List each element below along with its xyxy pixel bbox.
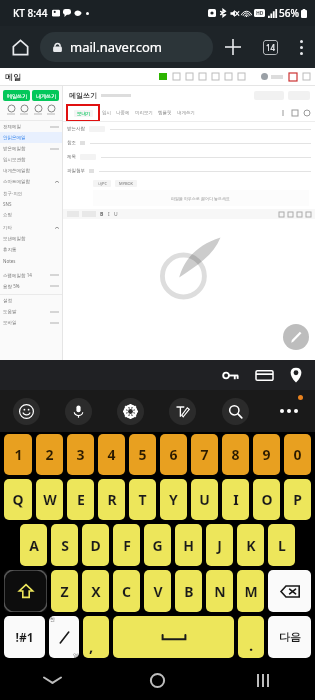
button[interactable]: C [113,570,140,612]
button[interactable]: A [20,524,47,566]
button[interactable]: 휴지통 [0,244,62,255]
button[interactable]: 스팸메일함 14 [0,269,62,280]
button[interactable]: 2 [36,434,63,475]
button[interactable]: Notes [0,255,62,266]
button[interactable]: P [284,479,311,520]
staticText: 한 [50,616,55,622]
button[interactable]: mail.naver.com [40,32,213,62]
button[interactable]: S [51,524,78,566]
button[interactable]: 9 [253,434,280,475]
button[interactable]: More [262,390,315,432]
button[interactable]: H [175,524,202,566]
button[interactable]: 용량 5% [0,280,62,291]
button[interactable]: Recent apps [210,660,315,700]
button[interactable]: 내게쓰기 [32,90,59,101]
staticText: 보낸메일함 [3,236,26,242]
button[interactable]: 다음 [268,616,311,658]
staticText: 7 [200,445,209,464]
button[interactable]: M [237,570,264,612]
button[interactable]: Home [105,660,210,700]
staticText: MYBOX [119,181,133,186]
button[interactable]: 메일쓰기 [3,90,30,101]
button[interactable]: F [113,524,140,566]
button[interactable]: O [253,479,280,520]
button[interactable]: G [144,524,171,566]
button[interactable]: L [268,524,295,566]
button[interactable]: 템플릿 [158,110,172,116]
button[interactable]: 6 [160,434,187,475]
button[interactable]: Tabs: 14 [253,26,287,68]
button[interactable]: Compose [283,324,309,350]
button[interactable]: Voice input [52,390,104,432]
button[interactable]: 나중에 [116,110,130,116]
button[interactable]: 7 [191,434,218,475]
staticText: 설정 [3,298,12,304]
button[interactable]: , [83,616,109,658]
staticText: I [108,211,110,218]
button[interactable]: D [82,524,109,566]
button[interactable]: 보내기 [74,110,93,117]
button[interactable]: B [175,570,202,612]
button[interactable]: Payment methods [247,360,281,390]
button[interactable]: 5 [129,434,156,475]
button[interactable]: Backspace [268,570,311,612]
button[interactable]: Korean English toggle [49,616,79,658]
button[interactable]: MYBOX [115,180,137,187]
button[interactable]: 친구·지인 [0,187,62,198]
button[interactable]: V [144,570,171,612]
button[interactable]: Y [160,479,187,520]
button[interactable]: 설정 [0,295,62,306]
button[interactable]: E [67,479,94,520]
button[interactable]: 임시보관함 [0,154,62,165]
button[interactable]: Z [51,570,78,612]
button[interactable]: Settings [104,390,156,432]
button[interactable]: I [222,479,249,520]
button[interactable]: R [98,479,125,520]
button[interactable]: 내게쓴메일함 [0,165,62,176]
button[interactable]: 보낸메일함 [0,233,62,244]
button[interactable]: Handwriting [156,390,209,432]
button[interactable]: 기타 [0,222,62,233]
button[interactable]: Space [113,616,234,658]
staticText: 쇼핑 [3,212,12,218]
button[interactable]: J [206,524,233,566]
button[interactable]: 1 [4,434,32,475]
button[interactable]: 쇼핑 [0,209,62,220]
button[interactable]: K [237,524,264,566]
button[interactable]: 4 [98,434,125,475]
button[interactable]: SNS [0,198,62,209]
button[interactable]: Passwords [213,360,247,390]
button[interactable]: Back [0,660,105,700]
button[interactable]: Search [209,390,262,432]
button[interactable]: 내게쓰기 [177,110,195,116]
button[interactable]: Shift [4,570,47,612]
button[interactable]: 임시 [102,110,111,116]
button[interactable]: N [206,570,233,612]
button[interactable]: T [129,479,156,520]
button[interactable]: More options [287,26,315,68]
button[interactable]: 8 [222,434,249,475]
staticText: 임시보관함 [3,157,26,163]
button[interactable]: 받은메일함 [0,143,62,154]
button[interactable]: X [82,570,109,612]
button[interactable]: 안읽은메일 [0,132,62,143]
button[interactable]: !#1 [4,616,45,658]
button[interactable]: Addresses [281,360,311,390]
button[interactable]: 내PC [93,180,111,187]
button[interactable]: 3 [67,434,94,475]
button[interactable]: Q [4,479,32,520]
button[interactable]: 도움말 [0,306,62,317]
staticText: 받는사람 [67,126,85,132]
button[interactable]: Home [0,26,40,68]
button[interactable]: . [238,616,264,658]
button[interactable]: Emoji [0,390,52,432]
button[interactable]: 모바일 [0,317,62,328]
button[interactable]: 0 [284,434,311,475]
button[interactable]: 전체메일 [0,121,62,132]
button[interactable]: New tab [213,26,253,68]
button[interactable]: 미리보기 [135,110,153,116]
button[interactable]: U [191,479,218,520]
button[interactable]: W [36,479,63,520]
button[interactable]: 스마트메일함 [0,176,62,187]
staticText: 3 [76,445,85,464]
